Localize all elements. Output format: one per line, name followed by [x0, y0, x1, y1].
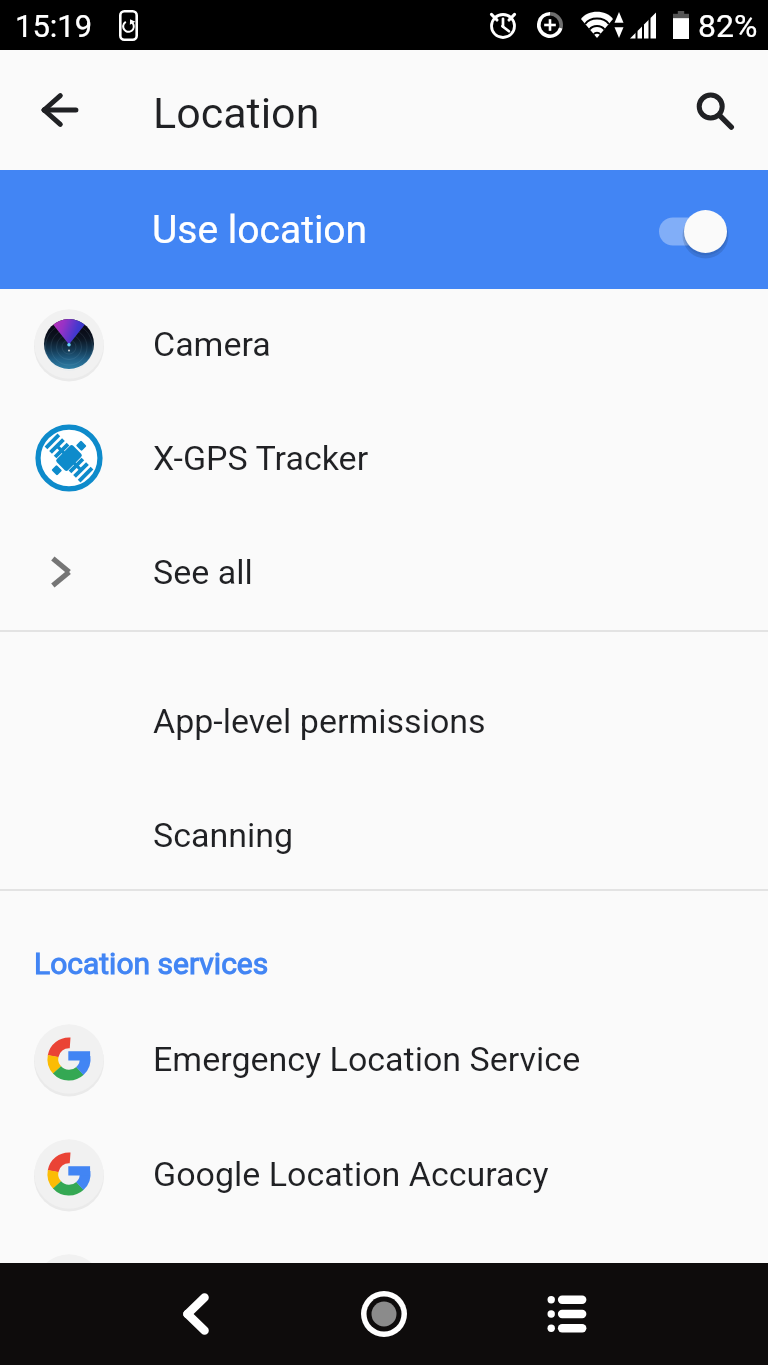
staticText: Camera — [153, 324, 271, 364]
button[interactable]: See all — [0, 515, 768, 629]
staticText: 15:19 — [15, 8, 93, 44]
staticText: X-GPS Tracker — [153, 438, 369, 478]
button[interactable]: App-level permissions — [0, 664, 768, 778]
button[interactable]: Emergency Location Service — [0, 1002, 768, 1116]
staticText: Google Location Accuracy — [153, 1154, 549, 1194]
button[interactable]: Home — [336, 1263, 432, 1365]
button[interactable]: Back — [148, 1263, 244, 1365]
button[interactable]: Back — [20, 70, 100, 150]
staticText: Scanning — [153, 815, 294, 855]
staticText: See all — [153, 552, 253, 592]
staticText: 82% — [698, 7, 758, 45]
button[interactable]: Recent apps — [519, 1263, 615, 1365]
staticText: App-level permissions — [153, 701, 486, 741]
staticText: Use location — [152, 207, 368, 253]
button[interactable]: Search — [671, 70, 751, 150]
button[interactable]: Camera — [0, 287, 768, 401]
staticText: Location — [153, 88, 320, 138]
button[interactable]: Use location — [0, 170, 768, 289]
staticText: Emergency Location Service — [153, 1039, 581, 1079]
button[interactable]: Scanning — [0, 778, 768, 892]
button[interactable]: Google Location Accuracy — [0, 1117, 768, 1231]
button[interactable] — [0, 1232, 768, 1346]
button[interactable]: X-GPS Tracker — [0, 401, 768, 515]
staticText: Location services — [34, 946, 269, 981]
